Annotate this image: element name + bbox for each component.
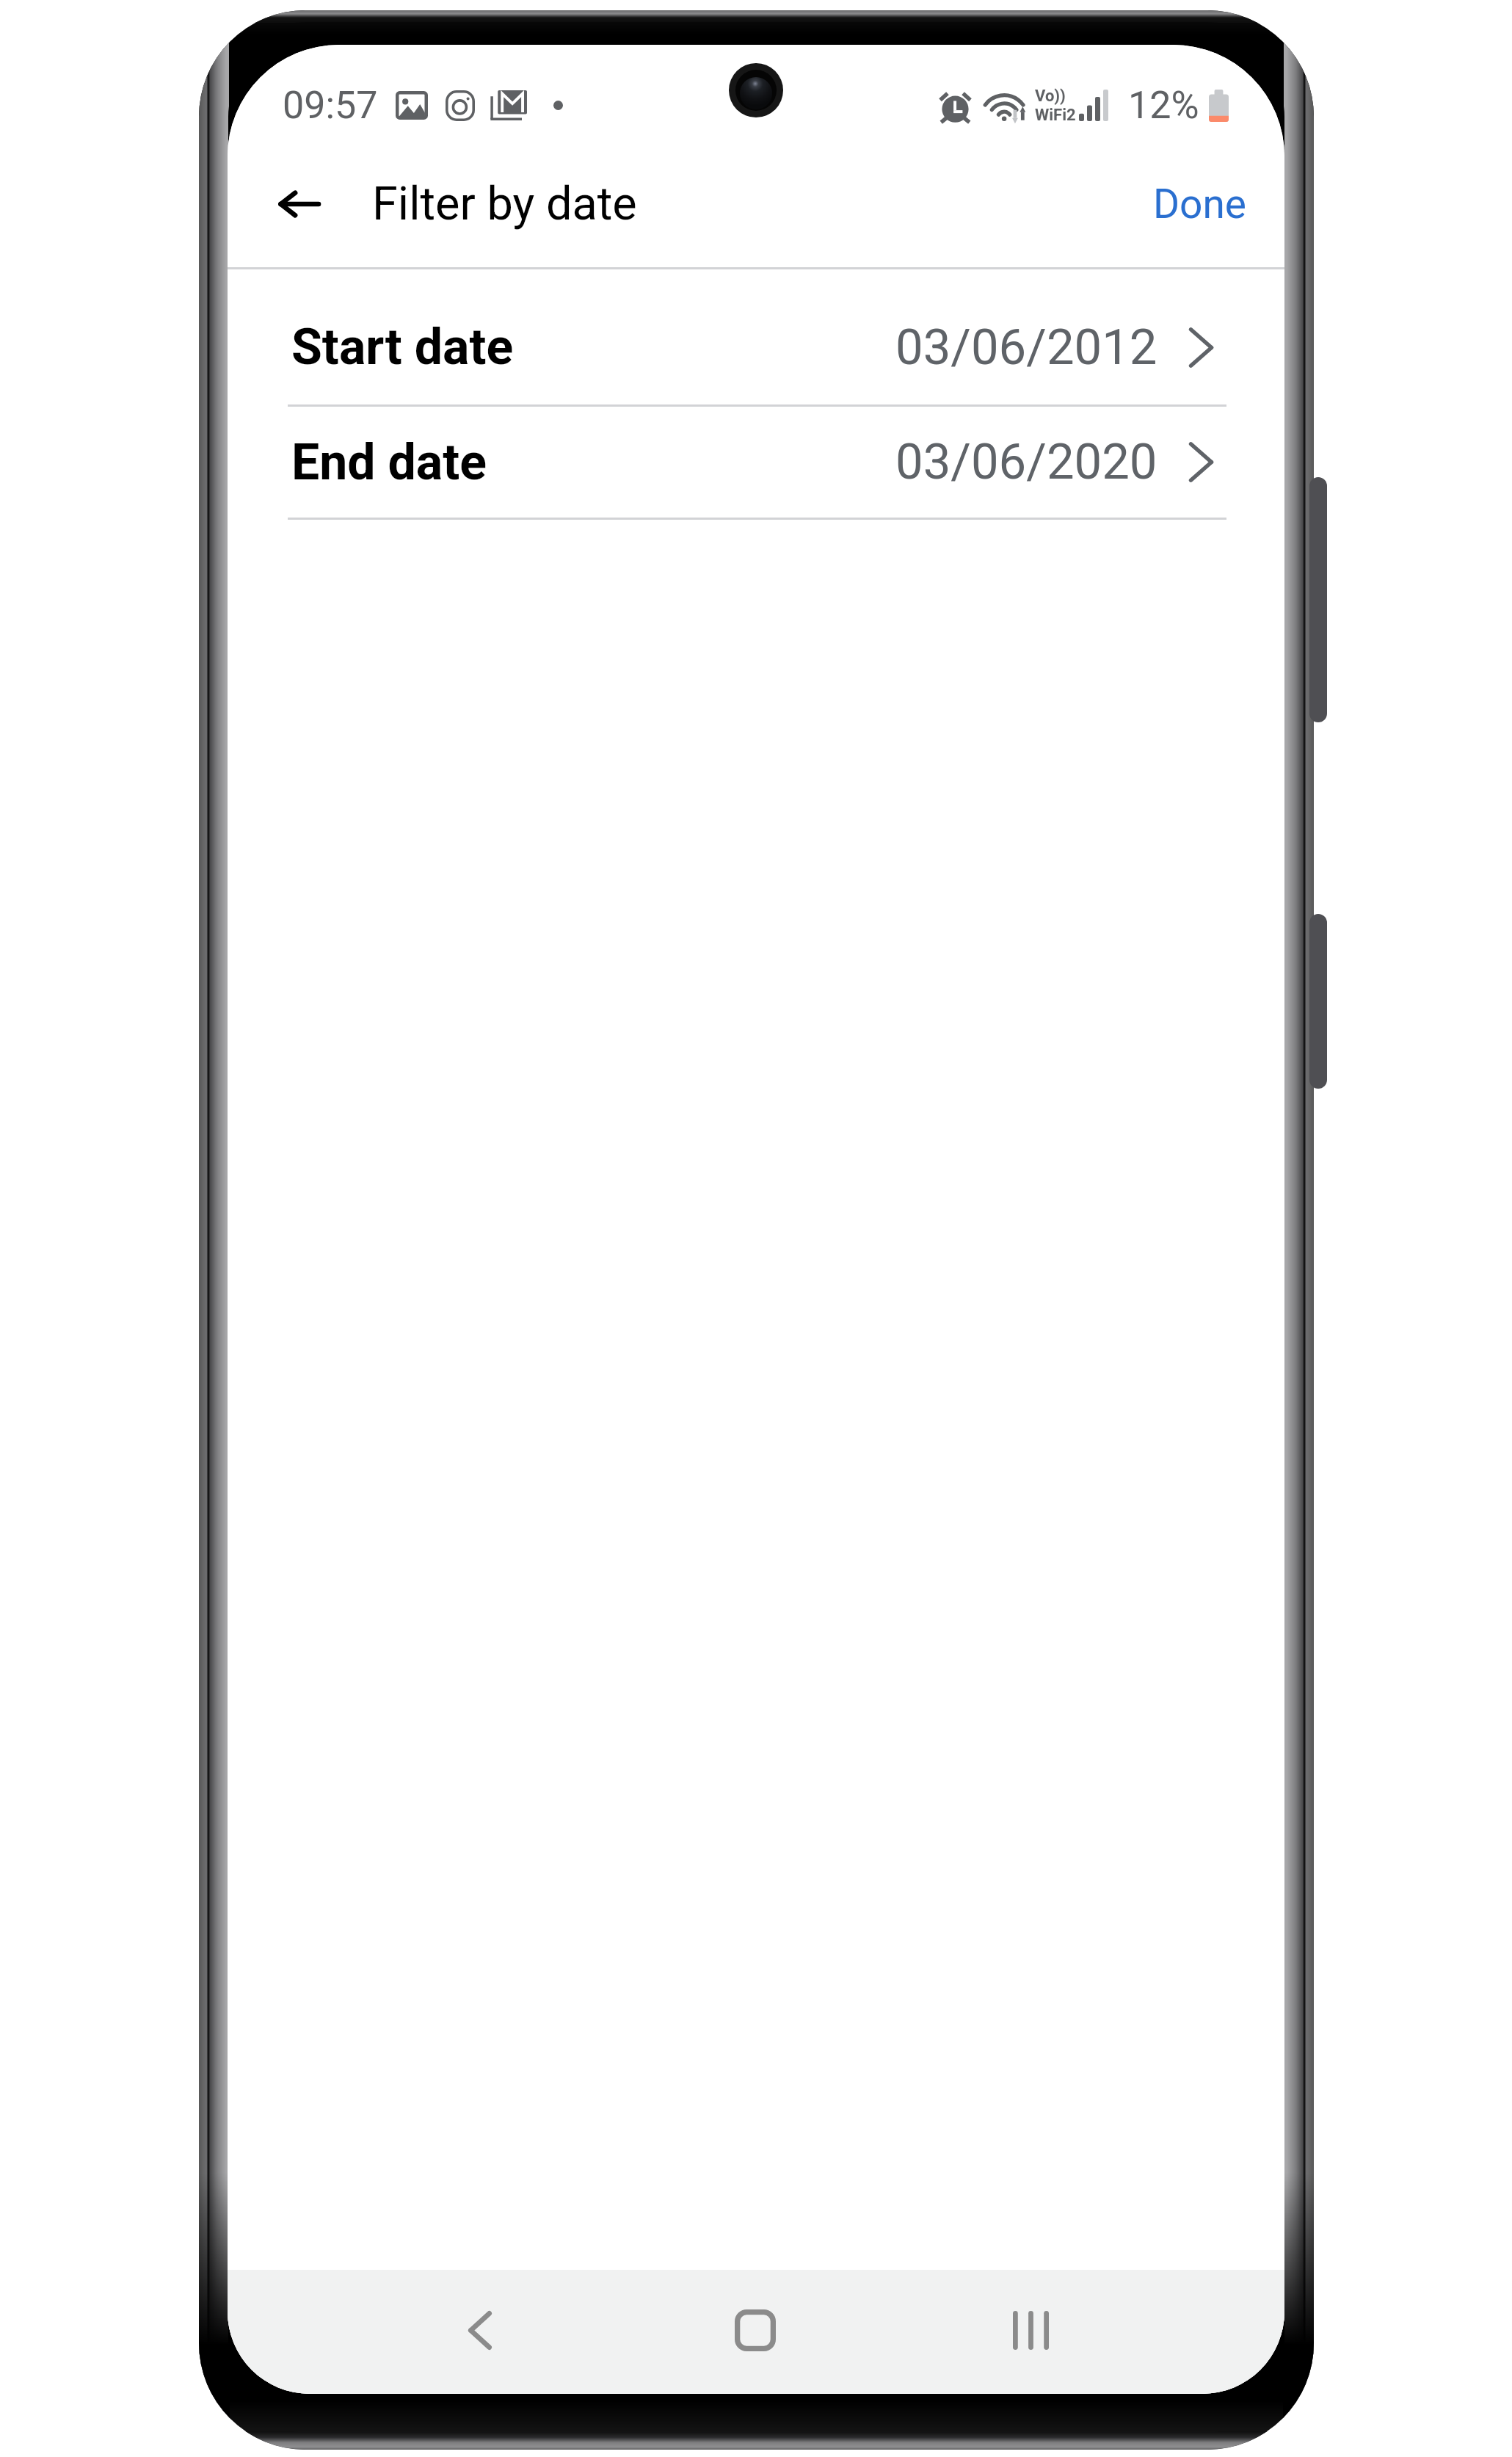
staticText: 12% [1128,83,1199,128]
button[interactable]: Home [705,2275,804,2385]
button[interactable]: Start date [228,269,1284,404]
button[interactable]: End date [228,407,1284,518]
staticText: 09:57 [283,83,378,128]
button[interactable]: Done [1128,170,1284,238]
staticText: Done [1153,181,1246,228]
staticText: 03/06/2012 [895,319,1157,377]
staticText: Vo)) [1035,87,1066,106]
button[interactable]: Back [430,2275,529,2385]
staticText: Start date [291,318,514,377]
staticText: 03/06/2020 [895,433,1157,491]
staticText: Filter by date [372,177,637,231]
button[interactable]: Recents [981,2275,1080,2385]
staticText: End date [291,433,487,492]
button[interactable]: Back [257,166,342,242]
staticText: WiFi2 [1035,106,1076,125]
